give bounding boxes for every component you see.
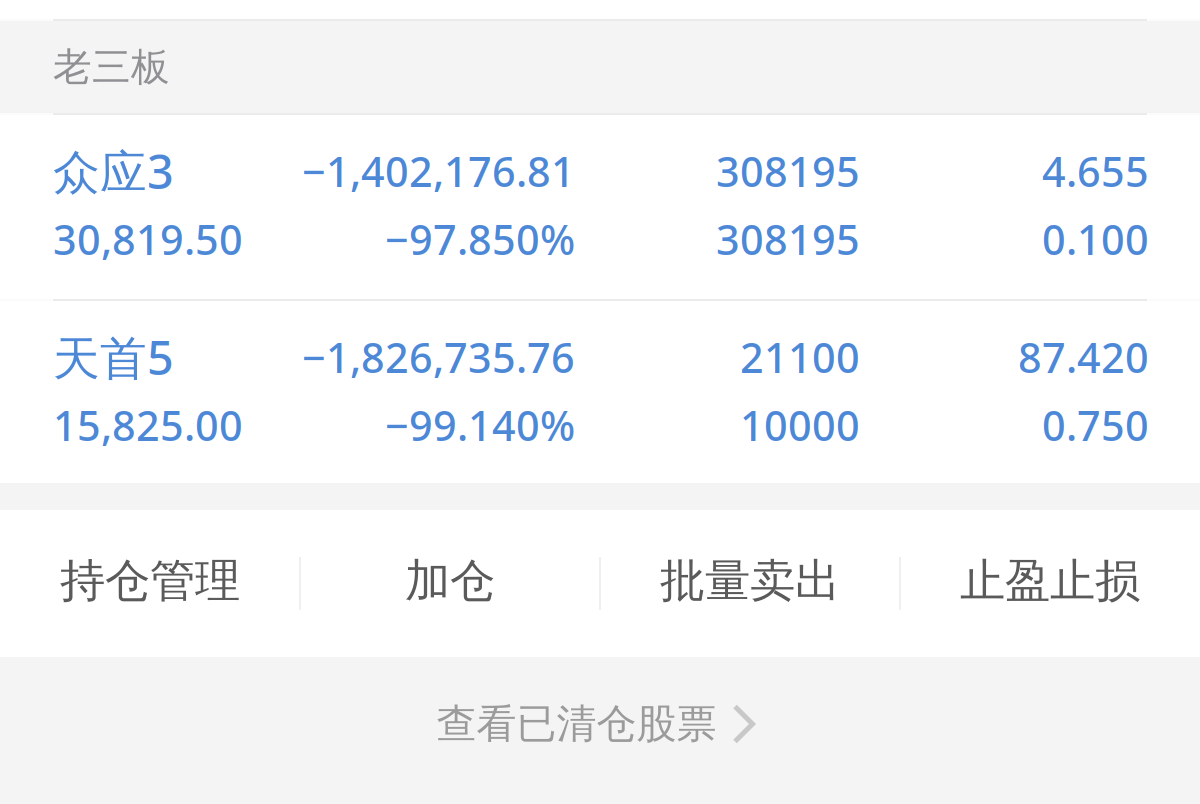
staticText: 30,819.50 [53, 212, 243, 266]
staticText: −1,402,176.81 [302, 144, 575, 198]
button[interactable]: 众应3 [0, 115, 1200, 299]
button[interactable]: 加仓 [300, 510, 600, 657]
button[interactable]: 查看已清仓股票 [0, 657, 1200, 804]
staticText: 4.655 [1042, 144, 1149, 198]
button[interactable]: 止盈止损 [900, 510, 1200, 657]
staticText: 0.750 [1042, 398, 1149, 452]
staticText: 批量卖出 [660, 553, 840, 609]
staticText: 天首5 [53, 326, 174, 388]
button[interactable]: 批量卖出 [600, 510, 900, 657]
staticText: 15,825.00 [53, 398, 243, 452]
staticText: 308195 [716, 212, 860, 266]
staticText: 308195 [716, 144, 860, 198]
staticText: −99.140% [385, 398, 575, 452]
staticText: 21100 [740, 330, 860, 384]
button[interactable]: 天首5 [0, 301, 1200, 483]
staticText: 查看已清仓股票 [436, 699, 716, 748]
staticText: −97.850% [385, 212, 575, 266]
staticText: 持仓管理 [60, 553, 240, 609]
staticText: 0.100 [1042, 212, 1149, 266]
staticText: 10000 [740, 398, 860, 452]
staticText: 众应3 [53, 140, 174, 202]
staticText: 87.420 [1018, 330, 1149, 384]
staticText: 加仓 [405, 553, 495, 609]
staticText: −1,826,735.76 [302, 330, 575, 384]
staticText: 老三板 [53, 43, 170, 91]
button[interactable]: 持仓管理 [0, 510, 300, 657]
staticText: 止盈止损 [960, 553, 1140, 609]
